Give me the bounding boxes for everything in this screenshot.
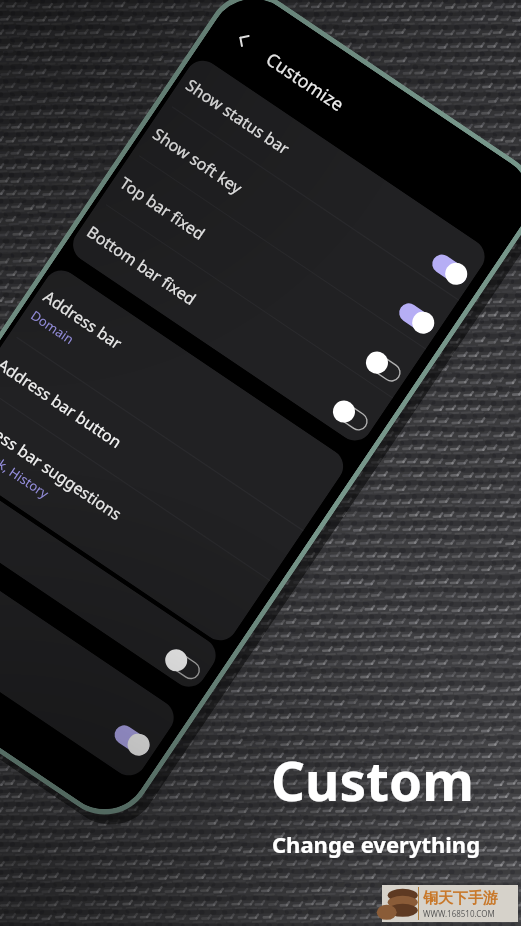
button[interactable]: Address bar button [0, 333, 303, 581]
staticText: Address bar [39, 285, 127, 354]
staticText: Address bar suggestions [0, 403, 126, 525]
button[interactable]: Dark mode [0, 515, 181, 782]
staticText: Top bar fixed [116, 172, 209, 245]
button[interactable]: Switch on [428, 249, 471, 289]
button[interactable]: Switch on [395, 298, 438, 338]
staticText: Domain [27, 306, 78, 348]
button[interactable]: Bottom bar fixed [66, 200, 393, 447]
staticText: Custom [271, 744, 474, 816]
button[interactable]: Switch off [329, 396, 372, 436]
button[interactable]: Back [222, 18, 264, 60]
staticText: Show status bar [182, 74, 294, 160]
button[interactable]: Open tab [0, 453, 223, 694]
staticText: Address bar button [0, 353, 127, 453]
staticText: Bookmark, History [0, 424, 53, 503]
button[interactable]: Top bar fixed [99, 152, 426, 398]
button[interactable]: Show soft key [132, 103, 459, 350]
button[interactable]: Switch off [362, 347, 405, 387]
staticText: WWW.168510.COM [423, 908, 495, 919]
button[interactable]: Switch off [161, 645, 205, 684]
button[interactable]: Switch on [110, 720, 154, 760]
button[interactable]: Address bar suggestions [0, 383, 270, 647]
staticText: Customize [261, 47, 349, 117]
staticText: 铜天下手游 [423, 889, 498, 908]
staticText: Bottom bar fixed [83, 221, 200, 310]
staticText: Show soft key [149, 123, 246, 199]
button[interactable]: Address bar [10, 264, 350, 531]
button[interactable]: Show status bar [165, 54, 492, 301]
staticText: Change everything [272, 829, 481, 859]
